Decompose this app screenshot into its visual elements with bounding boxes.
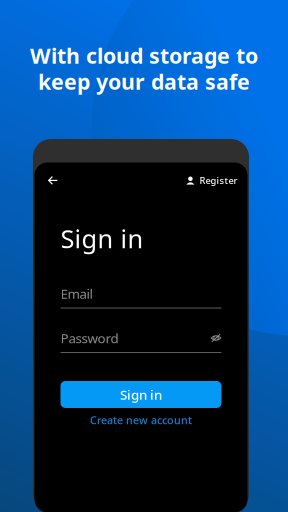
staticText: Email <box>60 285 92 302</box>
staticText: Password <box>60 329 118 347</box>
button[interactable]: Register <box>186 167 237 193</box>
staticText: Register <box>199 174 237 187</box>
staticText: Create new account <box>90 413 192 427</box>
staticText: Sign in <box>60 222 143 255</box>
staticText: Sign in <box>120 386 162 403</box>
button[interactable]: Create new account <box>60 414 221 426</box>
staticText: keep your data safe <box>38 67 250 96</box>
button[interactable]: Back <box>40 167 66 193</box>
button[interactable]: Sign in <box>60 381 221 408</box>
staticText: With cloud storage to <box>30 41 258 70</box>
button[interactable]: Show password <box>210 333 221 343</box>
